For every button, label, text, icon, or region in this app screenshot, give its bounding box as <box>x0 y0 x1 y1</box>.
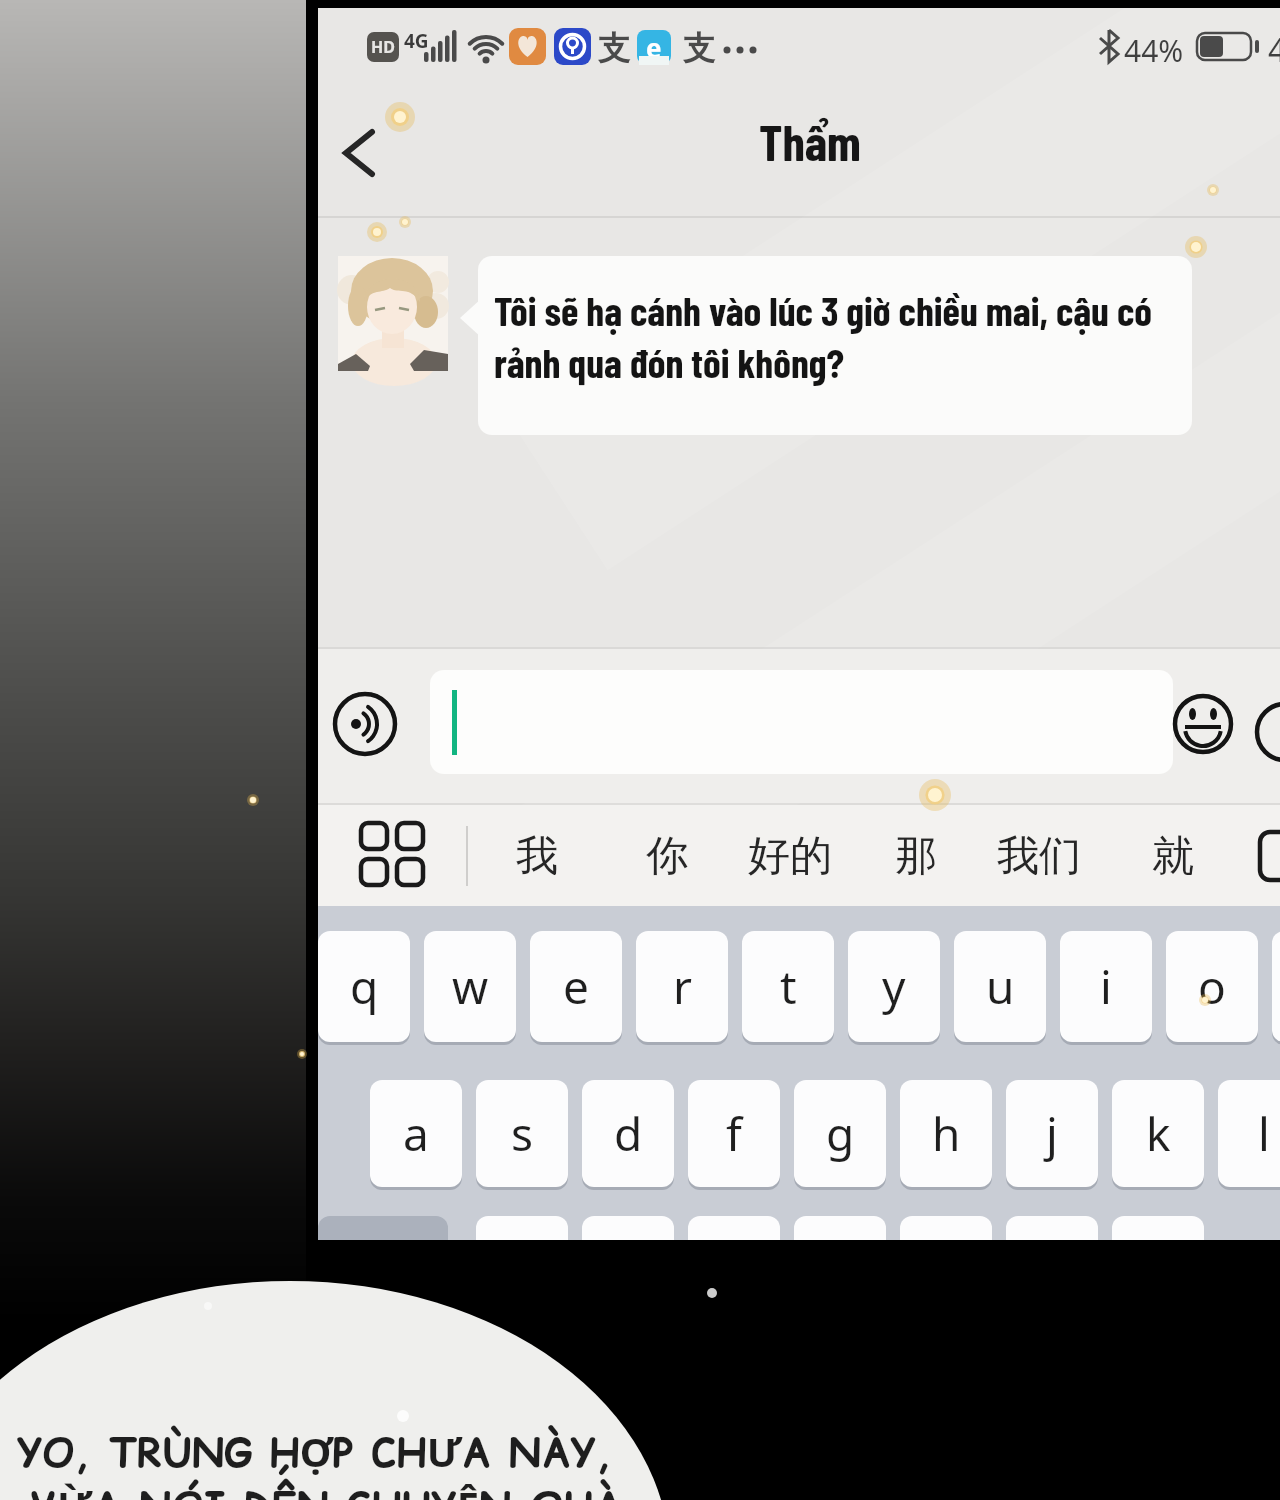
staticText: u <box>986 955 1015 1018</box>
staticText: 支 <box>598 28 630 68</box>
staticText: s <box>511 1102 534 1165</box>
button[interactable] <box>900 1216 992 1240</box>
staticText: 你 <box>646 830 688 883</box>
staticText: 我 <box>516 830 558 883</box>
button[interactable] <box>794 1216 886 1240</box>
button[interactable]: 你 <box>612 824 722 888</box>
staticText: h <box>932 1102 961 1165</box>
button[interactable] <box>582 1216 674 1240</box>
staticText: 44% <box>1124 30 1184 71</box>
staticText: w <box>452 955 489 1018</box>
staticText: o <box>1198 955 1226 1018</box>
staticText: 那 <box>895 830 937 883</box>
staticText: rảnh qua đón tôi không? <box>494 338 844 386</box>
button[interactable]: h <box>900 1080 992 1187</box>
staticText: e <box>563 955 589 1018</box>
staticText: 支 <box>683 28 715 68</box>
button[interactable]: q <box>318 931 410 1042</box>
staticText: q <box>350 955 379 1018</box>
staticText: t <box>780 955 797 1018</box>
button[interactable] <box>318 1216 448 1240</box>
button[interactable]: 我 <box>482 824 592 888</box>
button[interactable] <box>430 670 1173 774</box>
staticText: Tôi sẽ hạ cánh vào lúc 3 giờ chiều mai, … <box>494 286 1152 334</box>
staticText: Thẩm <box>759 111 861 171</box>
button[interactable]: l <box>1218 1080 1280 1187</box>
button[interactable]: w <box>424 931 516 1042</box>
staticText: f <box>726 1102 742 1165</box>
button[interactable] <box>688 1216 780 1240</box>
staticText: 我们 <box>997 830 1081 883</box>
staticText: YO, TRÙNG HỢP CHƯA NÀY, <box>17 1424 614 1480</box>
staticText: k <box>1146 1102 1171 1165</box>
staticText: 好的 <box>748 830 832 883</box>
button[interactable] <box>1112 1216 1204 1240</box>
button[interactable]: a <box>370 1080 462 1187</box>
button[interactable]: 我们 <box>984 824 1094 888</box>
staticText: g <box>826 1102 855 1165</box>
button[interactable]: o <box>1166 931 1258 1042</box>
staticText: e <box>646 30 662 64</box>
staticText: VỪA NÓI ĐẾN CHUYỆN QUÀ <box>30 1478 623 1500</box>
button[interactable]: r <box>636 931 728 1042</box>
button[interactable]: 好的 <box>735 824 845 888</box>
button[interactable]: t <box>742 931 834 1042</box>
button[interactable]: u <box>954 931 1046 1042</box>
button[interactable]: 那 <box>861 824 971 888</box>
button[interactable]: f <box>688 1080 780 1187</box>
button[interactable]: k <box>1112 1080 1204 1187</box>
staticText: r <box>673 955 692 1018</box>
button[interactable]: e <box>530 931 622 1042</box>
button[interactable]: d <box>582 1080 674 1187</box>
button[interactable]: s <box>476 1080 568 1187</box>
button[interactable] <box>1006 1216 1098 1240</box>
button[interactable] <box>476 1216 568 1240</box>
button[interactable]: j <box>1006 1080 1098 1187</box>
staticText: HD <box>371 36 395 58</box>
button[interactable]: 就 <box>1118 824 1228 888</box>
staticText: d <box>614 1102 643 1165</box>
staticText: 4 <box>1268 28 1280 72</box>
button[interactable] <box>332 691 398 757</box>
staticText: y <box>882 955 906 1018</box>
button[interactable]: i <box>1060 931 1152 1042</box>
button[interactable]: p <box>1272 931 1280 1042</box>
button[interactable] <box>338 256 448 371</box>
button[interactable]: y <box>848 931 940 1042</box>
button[interactable]: Tôi sẽ hạ cánh vào lúc 3 giờ chiều mai, … <box>478 256 1192 435</box>
staticText: l <box>1258 1102 1270 1165</box>
button[interactable] <box>1172 693 1234 755</box>
staticText: 就 <box>1152 830 1194 883</box>
staticText: j <box>1046 1102 1058 1165</box>
staticText: 4G <box>404 28 429 54</box>
button[interactable] <box>358 820 430 892</box>
button[interactable]: g <box>794 1080 886 1187</box>
staticText: a <box>403 1102 429 1165</box>
staticText: i <box>1100 955 1112 1018</box>
button[interactable]: Thẩm <box>710 106 910 176</box>
